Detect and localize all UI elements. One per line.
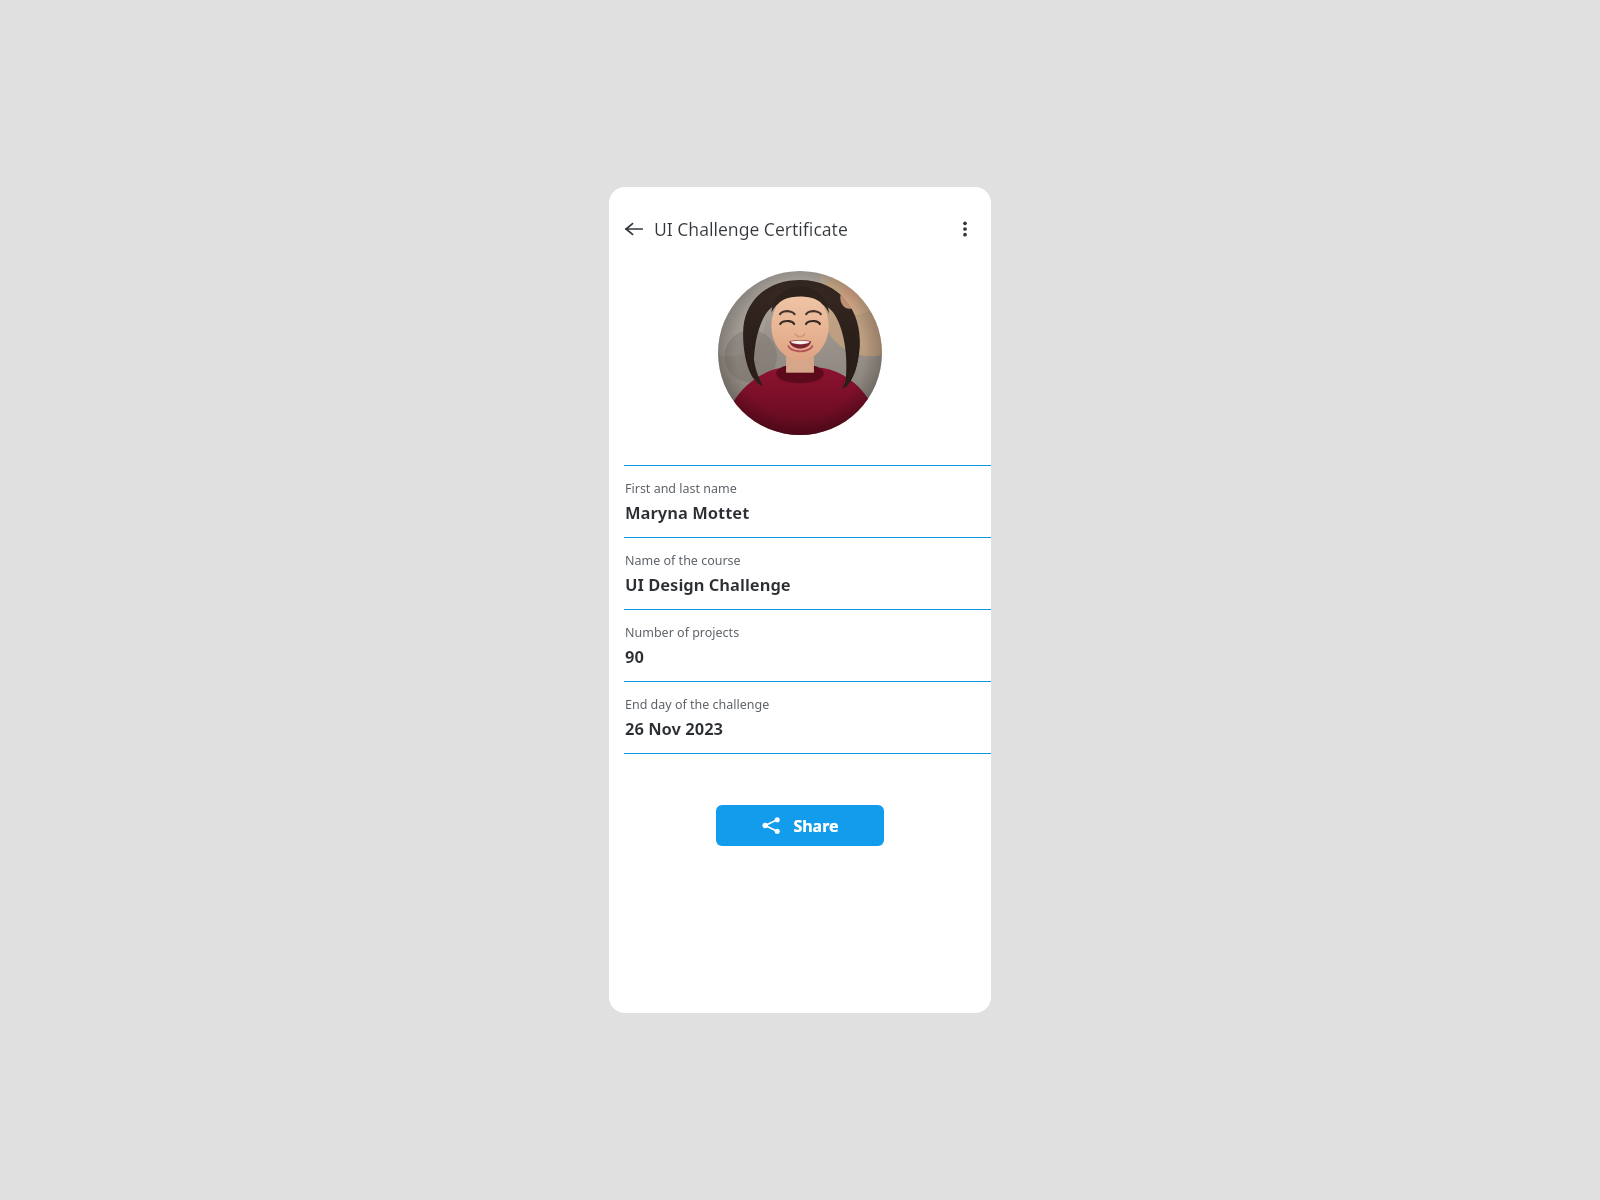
staticText: 90 [625,645,644,667]
staticText: UI Challenge Certificate [654,217,848,241]
staticText: Maryna Mottet [625,501,750,523]
button[interactable]: Number of projects [609,610,991,681]
staticText: UI Design Challenge [625,573,791,595]
staticText: Number of projects [625,624,740,641]
button[interactable]: Back [617,211,854,247]
other: Profile photo [718,271,882,435]
button[interactable]: Share [716,805,884,846]
staticText: First and last name [625,480,737,497]
staticText: Share [793,815,839,837]
button[interactable]: More options [943,207,987,251]
staticText: End day of the challenge [625,696,770,713]
staticText: 26 Nov 2023 [625,717,724,739]
staticText: Name of the course [625,552,741,569]
button[interactable]: Name of the course [609,538,991,609]
button[interactable]: First and last name [609,466,991,537]
button[interactable]: End day of the challenge [609,682,991,753]
